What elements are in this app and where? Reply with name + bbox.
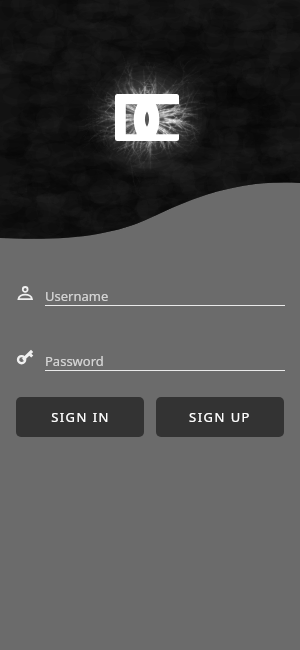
other: Password bbox=[13, 346, 36, 369]
other: Username bbox=[13, 281, 36, 304]
staticText: SIGN UP bbox=[189, 408, 251, 426]
staticText: Username bbox=[45, 287, 109, 305]
staticText: SIGN IN bbox=[51, 408, 110, 426]
button[interactable]: Password bbox=[13, 346, 285, 374]
button[interactable]: SIGN IN bbox=[16, 397, 144, 437]
staticText: Password bbox=[45, 352, 104, 370]
button[interactable]: Username bbox=[13, 281, 285, 309]
button[interactable]: SIGN UP bbox=[156, 397, 284, 437]
